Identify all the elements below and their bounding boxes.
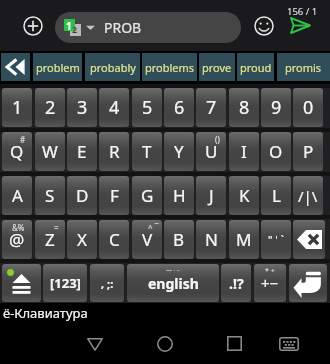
button[interactable]: O (261, 132, 291, 171)
staticText: , ;: (101, 276, 114, 291)
staticText: — · ·· (166, 266, 180, 274)
button[interactable]: C (99, 220, 129, 259)
staticText: /|\ (298, 186, 318, 206)
button[interactable]: B (164, 220, 194, 259)
staticText: 2 (45, 95, 56, 120)
button[interactable]: [123] (43, 264, 87, 302)
button[interactable]: S (35, 176, 65, 215)
button[interactable]: proud (237, 53, 274, 81)
staticText: 7 (206, 95, 217, 120)
staticText: @ (9, 228, 25, 251)
button[interactable]: X (67, 220, 97, 259)
button[interactable]: Q (2, 132, 32, 171)
button[interactable]: 3 (67, 88, 97, 127)
staticText: probably (90, 60, 136, 75)
staticText: ё-Клавиатура (3, 304, 88, 322)
button[interactable]: @ (2, 220, 32, 259)
button[interactable]: 1 (55, 12, 241, 43)
button[interactable] (289, 264, 327, 302)
staticText: T (142, 140, 152, 163)
button[interactable]: L (261, 176, 291, 215)
staticText: 1 (12, 95, 23, 120)
staticText: 1 (66, 19, 72, 33)
staticText: L (272, 184, 281, 207)
button[interactable]: english (127, 264, 219, 302)
button[interactable]: T (132, 132, 162, 171)
button[interactable]: 9 (261, 88, 291, 127)
staticText: * ÷ (265, 266, 275, 276)
staticText: M (236, 228, 252, 251)
button[interactable]: P (293, 132, 323, 171)
button[interactable]: J (196, 176, 226, 215)
button[interactable]: Home (149, 328, 180, 359)
button[interactable]: Y (164, 132, 194, 171)
button[interactable]: Emoji (254, 16, 274, 36)
button[interactable]: 5 (132, 88, 162, 127)
button[interactable]: F (99, 176, 129, 215)
staticText: 5 (142, 95, 153, 120)
button[interactable]: 7 (196, 88, 226, 127)
button[interactable]: problem (33, 53, 82, 81)
button[interactable]: Back (79, 329, 110, 360)
button[interactable]: Add (23, 16, 43, 36)
staticText: G (141, 184, 154, 207)
staticText: = (54, 222, 59, 233)
button[interactable]: 8 (229, 88, 259, 127)
button[interactable]: E (67, 132, 97, 171)
staticText: X (77, 228, 87, 251)
button[interactable]: D (67, 176, 97, 215)
button[interactable]: H (164, 176, 194, 215)
button[interactable]: 6 (164, 88, 194, 127)
button[interactable]: promis (277, 53, 330, 81)
staticText: proud (240, 60, 272, 75)
button[interactable]: I (229, 132, 259, 171)
button[interactable]: N (196, 220, 226, 259)
staticText: .!? (229, 274, 244, 293)
staticText: O (269, 140, 283, 163)
staticText: Z (45, 228, 55, 251)
staticText: V (142, 228, 153, 251)
button[interactable]: W (35, 132, 65, 171)
button[interactable]: 0 (293, 88, 323, 127)
button[interactable]: prove (199, 53, 235, 81)
staticText: 6 (174, 95, 185, 120)
staticText: problems (145, 60, 195, 75)
staticText: 8 (239, 95, 250, 120)
staticText: ^ ¯ (148, 222, 159, 233)
button[interactable]: /|\ (293, 176, 323, 215)
button[interactable]: Recents (219, 328, 250, 359)
button[interactable]: probably (85, 53, 140, 81)
staticText: english (148, 274, 199, 293)
button[interactable]: K (229, 176, 259, 215)
staticText: prove (202, 60, 232, 75)
button[interactable]: A (2, 176, 32, 215)
button[interactable]: M (229, 220, 259, 259)
button[interactable]: , ;: (90, 264, 124, 302)
staticText: E (77, 140, 87, 163)
button[interactable]: Keyboard (273, 328, 304, 359)
button[interactable]: U (196, 132, 226, 171)
button[interactable]: Send (290, 17, 311, 34)
button[interactable]: Previous suggestions (1, 53, 30, 81)
button[interactable]: 1 (2, 88, 32, 127)
button[interactable] (2, 264, 41, 302)
staticText: I (241, 140, 247, 163)
button[interactable]: +− (254, 264, 286, 302)
staticText: promis (285, 60, 322, 75)
button[interactable]: Z (35, 220, 65, 259)
staticText: W (42, 140, 58, 163)
staticText: Y (174, 140, 184, 163)
staticText: problem (36, 60, 80, 75)
button[interactable]: 2 (35, 88, 65, 127)
button[interactable]: 4 (99, 88, 129, 127)
button[interactable]: V (132, 220, 162, 259)
staticText: F (110, 184, 119, 207)
button[interactable]: problems (142, 53, 197, 81)
button[interactable]: .!? (221, 264, 251, 302)
staticText: H (173, 184, 186, 207)
button[interactable]: G (132, 176, 162, 215)
staticText: &% (12, 222, 25, 233)
button[interactable]: " ' ` (261, 220, 291, 259)
button[interactable]: R (99, 132, 129, 171)
button[interactable] (293, 220, 325, 259)
